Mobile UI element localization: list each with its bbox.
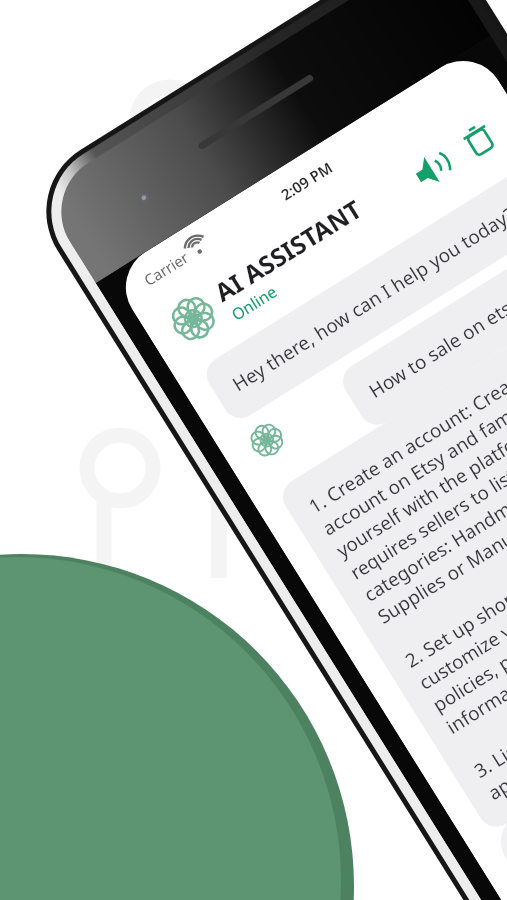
button[interactable]: AI Assistant app preview [0, 0, 507, 900]
